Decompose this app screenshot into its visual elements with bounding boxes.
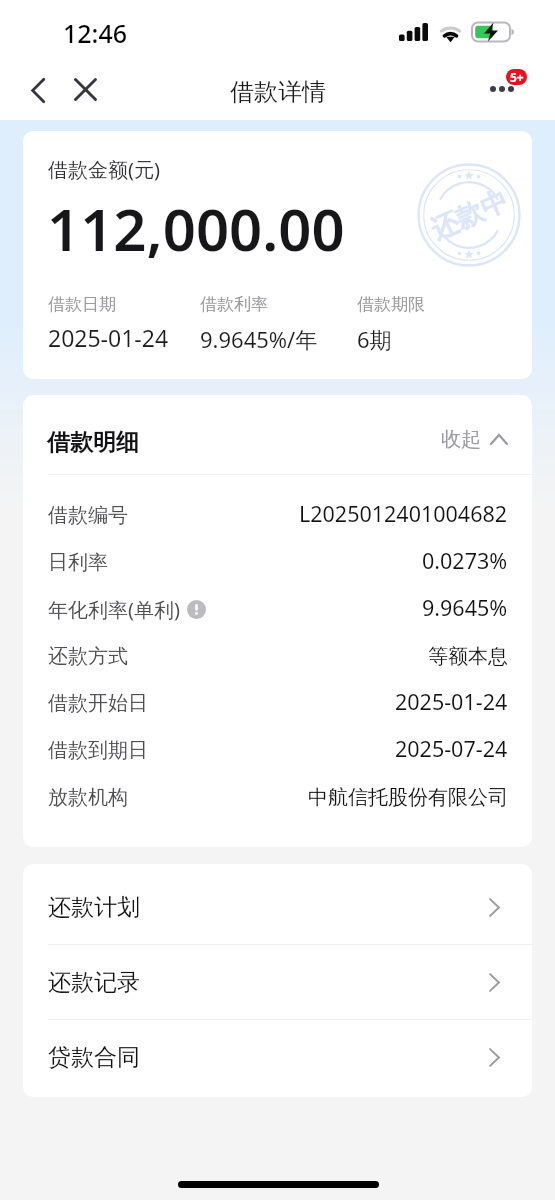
- staticText: 2025-01-24: [48, 322, 169, 353]
- staticText: 2025-01-24: [395, 687, 508, 716]
- staticText: 9.9645%/年: [200, 324, 318, 354]
- staticText: 借款编号: [48, 503, 128, 528]
- staticText: 112,000.00: [47, 189, 345, 268]
- staticText: 借款期限: [357, 294, 425, 315]
- button[interactable]: 收起: [441, 427, 508, 452]
- staticText: 还款记录: [48, 968, 140, 997]
- staticText: 借款明细: [47, 428, 139, 457]
- staticText: 年化利率(单利): [48, 596, 180, 623]
- staticText: 借款金额(元): [48, 156, 160, 183]
- button[interactable]: 还款计划: [23, 870, 532, 945]
- staticText: 5+: [510, 69, 524, 85]
- button[interactable]: Back: [16, 68, 60, 112]
- staticText: 0.0273%: [422, 546, 508, 575]
- staticText: 日利率: [48, 550, 108, 575]
- staticText: 9.9645%: [422, 593, 508, 622]
- staticText: 借款利率: [200, 294, 268, 315]
- staticText: 借款详情: [230, 77, 326, 107]
- staticText: L2025012401004682: [299, 499, 508, 528]
- button[interactable]: 还款记录: [23, 945, 532, 1020]
- staticText: 还款方式: [48, 644, 128, 669]
- button[interactable]: Close: [63, 67, 107, 111]
- staticText: 中航信托股份有限公司: [308, 785, 508, 810]
- staticText: 还款中: [426, 183, 513, 247]
- staticText: 收起: [441, 427, 481, 452]
- staticText: 6期: [357, 324, 392, 354]
- button[interactable]: More options: [480, 62, 536, 106]
- staticText: 借款日期: [48, 294, 116, 315]
- staticText: 借款到期日: [48, 738, 148, 763]
- staticText: 放款机构: [48, 785, 128, 810]
- staticText: 12:46: [63, 16, 128, 50]
- staticText: 等额本息: [428, 644, 508, 669]
- staticText: 2025-07-24: [395, 734, 508, 763]
- staticText: 借款开始日: [48, 691, 148, 716]
- button[interactable]: 贷款合同: [23, 1020, 532, 1095]
- staticText: 还款计划: [48, 893, 140, 922]
- staticText: 贷款合同: [48, 1043, 140, 1072]
